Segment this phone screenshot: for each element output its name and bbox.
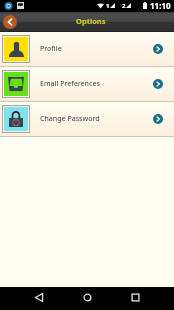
button[interactable]: Email Preferences <box>0 67 174 102</box>
staticText: 11:10 <box>150 0 171 11</box>
button[interactable]: Change Password <box>0 102 174 137</box>
staticText: Profile <box>40 44 62 54</box>
button[interactable]: Recent apps <box>123 287 147 310</box>
staticText: Options <box>76 16 106 26</box>
staticText: Change Password <box>40 114 100 124</box>
button[interactable]: Back <box>3 15 17 29</box>
button[interactable]: Back <box>27 287 51 310</box>
button[interactable]: Profile <box>0 32 174 67</box>
staticText: 2 <box>122 2 126 10</box>
staticText: 1 <box>106 2 110 10</box>
button[interactable]: Home <box>75 287 99 310</box>
staticText: Email Preferences <box>40 79 100 89</box>
